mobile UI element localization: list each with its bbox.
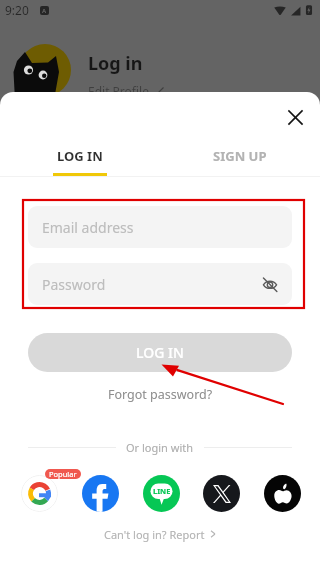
button[interactable]: LOG IN <box>28 333 292 372</box>
staticText: A <box>42 7 47 15</box>
staticText: Forgot password? <box>108 386 213 403</box>
button[interactable]: Password <box>28 263 292 305</box>
staticText: Popular <box>49 469 77 479</box>
button[interactable]: Forgot password? <box>100 384 220 404</box>
button[interactable]: SIGN UP <box>160 147 320 187</box>
staticText: SIGN UP <box>213 147 267 165</box>
staticText: Can't log in? Report <box>104 527 205 542</box>
staticText: 9:20 <box>5 2 29 18</box>
staticText: LOG IN <box>57 147 103 165</box>
staticText: LOG IN <box>136 343 184 362</box>
button[interactable]: Can't log in? Report <box>90 525 230 543</box>
staticText: Password <box>42 275 106 294</box>
button[interactable]: Sign in with X <box>203 475 240 512</box>
staticText: Or login with <box>126 440 194 455</box>
staticText: Edit Profile <box>88 83 149 99</box>
button[interactable]: LOG IN <box>0 147 160 187</box>
button[interactable]: Email address <box>28 206 292 248</box>
staticText: LINE <box>153 486 171 496</box>
button[interactable]: Close <box>281 103 309 131</box>
staticText: Log in <box>88 51 143 76</box>
staticText: Email address <box>42 218 134 237</box>
button[interactable]: Show password <box>257 271 283 297</box>
button[interactable]: Sign in with Facebook <box>82 475 119 512</box>
button[interactable]: Sign in with LINE <box>143 475 180 512</box>
button[interactable]: Sign in with Apple <box>264 475 301 512</box>
button[interactable]: Sign in with Google <box>21 475 58 512</box>
